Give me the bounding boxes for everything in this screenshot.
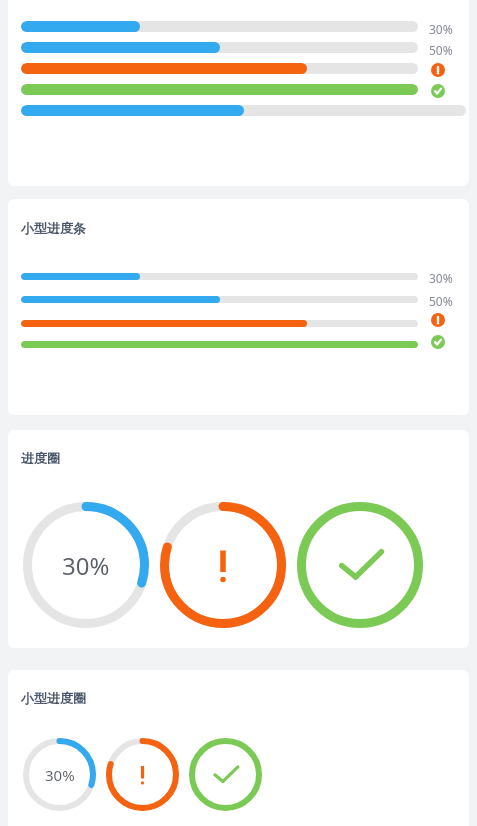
button[interactable] <box>160 502 286 628</box>
button[interactable]: 进度圈 <box>8 430 469 648</box>
staticText: 30% <box>62 549 110 582</box>
staticText: 30% <box>429 21 469 37</box>
button[interactable]: Success <box>431 84 445 98</box>
staticText: 小型进度圈 <box>21 690 86 706</box>
button[interactable] <box>297 502 423 628</box>
staticText: 小型进度条 <box>21 220 86 236</box>
button[interactable]: Success <box>431 335 445 349</box>
button[interactable]: 30% <box>8 0 469 186</box>
button[interactable]: 30% <box>23 738 96 811</box>
staticText: 30% <box>429 270 469 286</box>
button[interactable] <box>106 738 179 811</box>
button[interactable]: Warning <box>431 63 445 77</box>
button[interactable]: Warning <box>431 313 445 327</box>
button[interactable]: 小型进度条 <box>8 199 469 415</box>
staticText: 50% <box>429 293 469 309</box>
staticText: 进度圈 <box>21 450 60 466</box>
staticText: 30% <box>45 765 75 785</box>
button[interactable]: 30% <box>23 502 149 628</box>
staticText: 50% <box>429 42 469 58</box>
button[interactable]: 小型进度圈 <box>8 670 469 826</box>
button[interactable] <box>189 738 262 811</box>
